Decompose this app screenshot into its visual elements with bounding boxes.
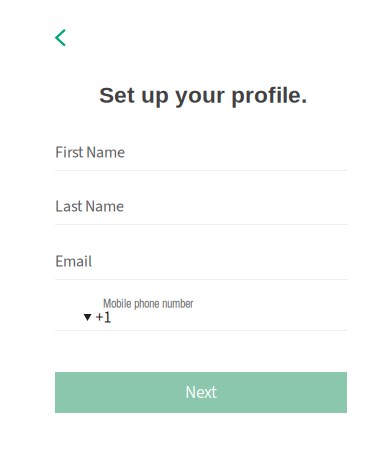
staticText: Mobile phone number	[103, 295, 193, 312]
staticText: Next	[185, 380, 217, 405]
staticText: Set up your profile.	[99, 82, 307, 108]
button[interactable]: Email	[55, 224, 347, 280]
staticText: +1	[95, 306, 111, 329]
staticText: Email	[55, 250, 92, 273]
staticText: First Name	[55, 141, 125, 164]
staticText: Last Name	[55, 195, 124, 218]
button[interactable]: Back	[45, 22, 75, 52]
button[interactable]: Next	[55, 372, 347, 413]
button[interactable]: First Name	[55, 116, 347, 171]
button[interactable]: Last Name	[55, 170, 347, 225]
button[interactable]: Mobile phone number	[55, 279, 347, 331]
